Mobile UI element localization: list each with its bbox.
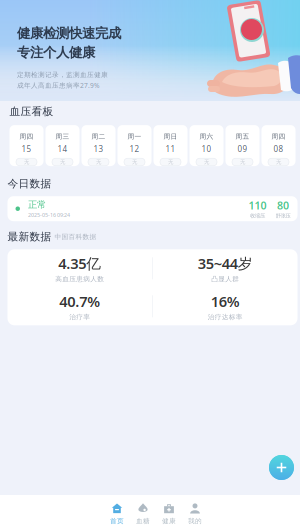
staticText: 35~44岁: [198, 253, 253, 273]
button[interactable]: 正常: [7, 196, 297, 221]
staticText: 110: [248, 198, 266, 212]
staticText: 周日: [163, 132, 177, 141]
staticText: 中国百科数据: [54, 233, 96, 241]
staticText: 无: [240, 159, 245, 165]
staticText: 定期检测记录，监测血压健康: [17, 71, 108, 79]
staticText: 治疗率: [69, 313, 90, 321]
staticText: 周一: [127, 132, 141, 141]
button[interactable]: 健康: [156, 495, 182, 527]
button[interactable]: 周一: [117, 125, 151, 166]
button[interactable]: 周五: [225, 125, 259, 166]
button[interactable]: 周二: [81, 125, 115, 166]
staticText: 14: [57, 144, 67, 154]
button[interactable]: 周日: [153, 125, 187, 166]
staticText: 11: [165, 144, 175, 154]
staticText: 无: [168, 159, 173, 165]
staticText: 周五: [235, 132, 249, 141]
staticText: 健康: [162, 517, 176, 525]
staticText: 2025-05-16 09:24: [28, 211, 70, 218]
staticText: 10: [201, 144, 211, 154]
staticText: 13: [93, 144, 103, 154]
staticText: 12: [129, 144, 139, 154]
staticText: 4.35亿: [58, 253, 101, 273]
staticText: 15: [21, 144, 31, 154]
staticText: 成年人高血压患病率27.9%: [17, 81, 100, 90]
button[interactable]: 周六: [189, 125, 223, 166]
staticText: 周四: [19, 132, 33, 141]
button[interactable]: 我的: [182, 495, 208, 527]
button[interactable]: 周三: [45, 125, 79, 166]
staticText: 首页: [110, 517, 124, 525]
staticText: 我的: [188, 517, 202, 525]
staticText: 09: [237, 144, 247, 154]
staticText: 健康检测快速完成: [17, 25, 121, 41]
staticText: 周六: [199, 132, 213, 141]
staticText: 无: [204, 159, 209, 165]
staticText: 08: [273, 144, 283, 154]
staticText: 正常: [28, 199, 46, 210]
staticText: 40.7%: [59, 291, 100, 311]
staticText: 今日数据: [7, 177, 51, 190]
button[interactable]: 周四: [261, 125, 295, 166]
staticText: 无: [96, 159, 101, 165]
staticText: 无: [60, 159, 65, 165]
staticText: 周四: [271, 132, 285, 141]
staticText: 无: [24, 159, 29, 165]
staticText: 无: [132, 159, 137, 165]
staticText: 凸显人群: [211, 275, 239, 283]
staticText: 80: [277, 198, 289, 212]
button[interactable]: 添加记录: [269, 455, 294, 480]
staticText: 血糖: [136, 517, 150, 525]
staticText: 周二: [91, 132, 105, 141]
staticText: 治疗达标率: [208, 313, 243, 321]
button[interactable]: 首页: [104, 495, 130, 527]
staticText: 周三: [55, 132, 69, 141]
staticText: 舒张压: [275, 212, 290, 219]
staticText: 最新数据: [7, 230, 51, 243]
staticText: 血压看板: [9, 105, 53, 118]
button[interactable]: 血糖: [130, 495, 156, 527]
staticText: 收缩压: [250, 212, 265, 219]
button[interactable]: 周四: [9, 125, 43, 166]
staticText: 16%: [211, 291, 240, 311]
staticText: 高血压患病人数: [55, 275, 104, 283]
staticText: 无: [276, 159, 281, 165]
staticText: 专注个人健康: [17, 44, 95, 61]
